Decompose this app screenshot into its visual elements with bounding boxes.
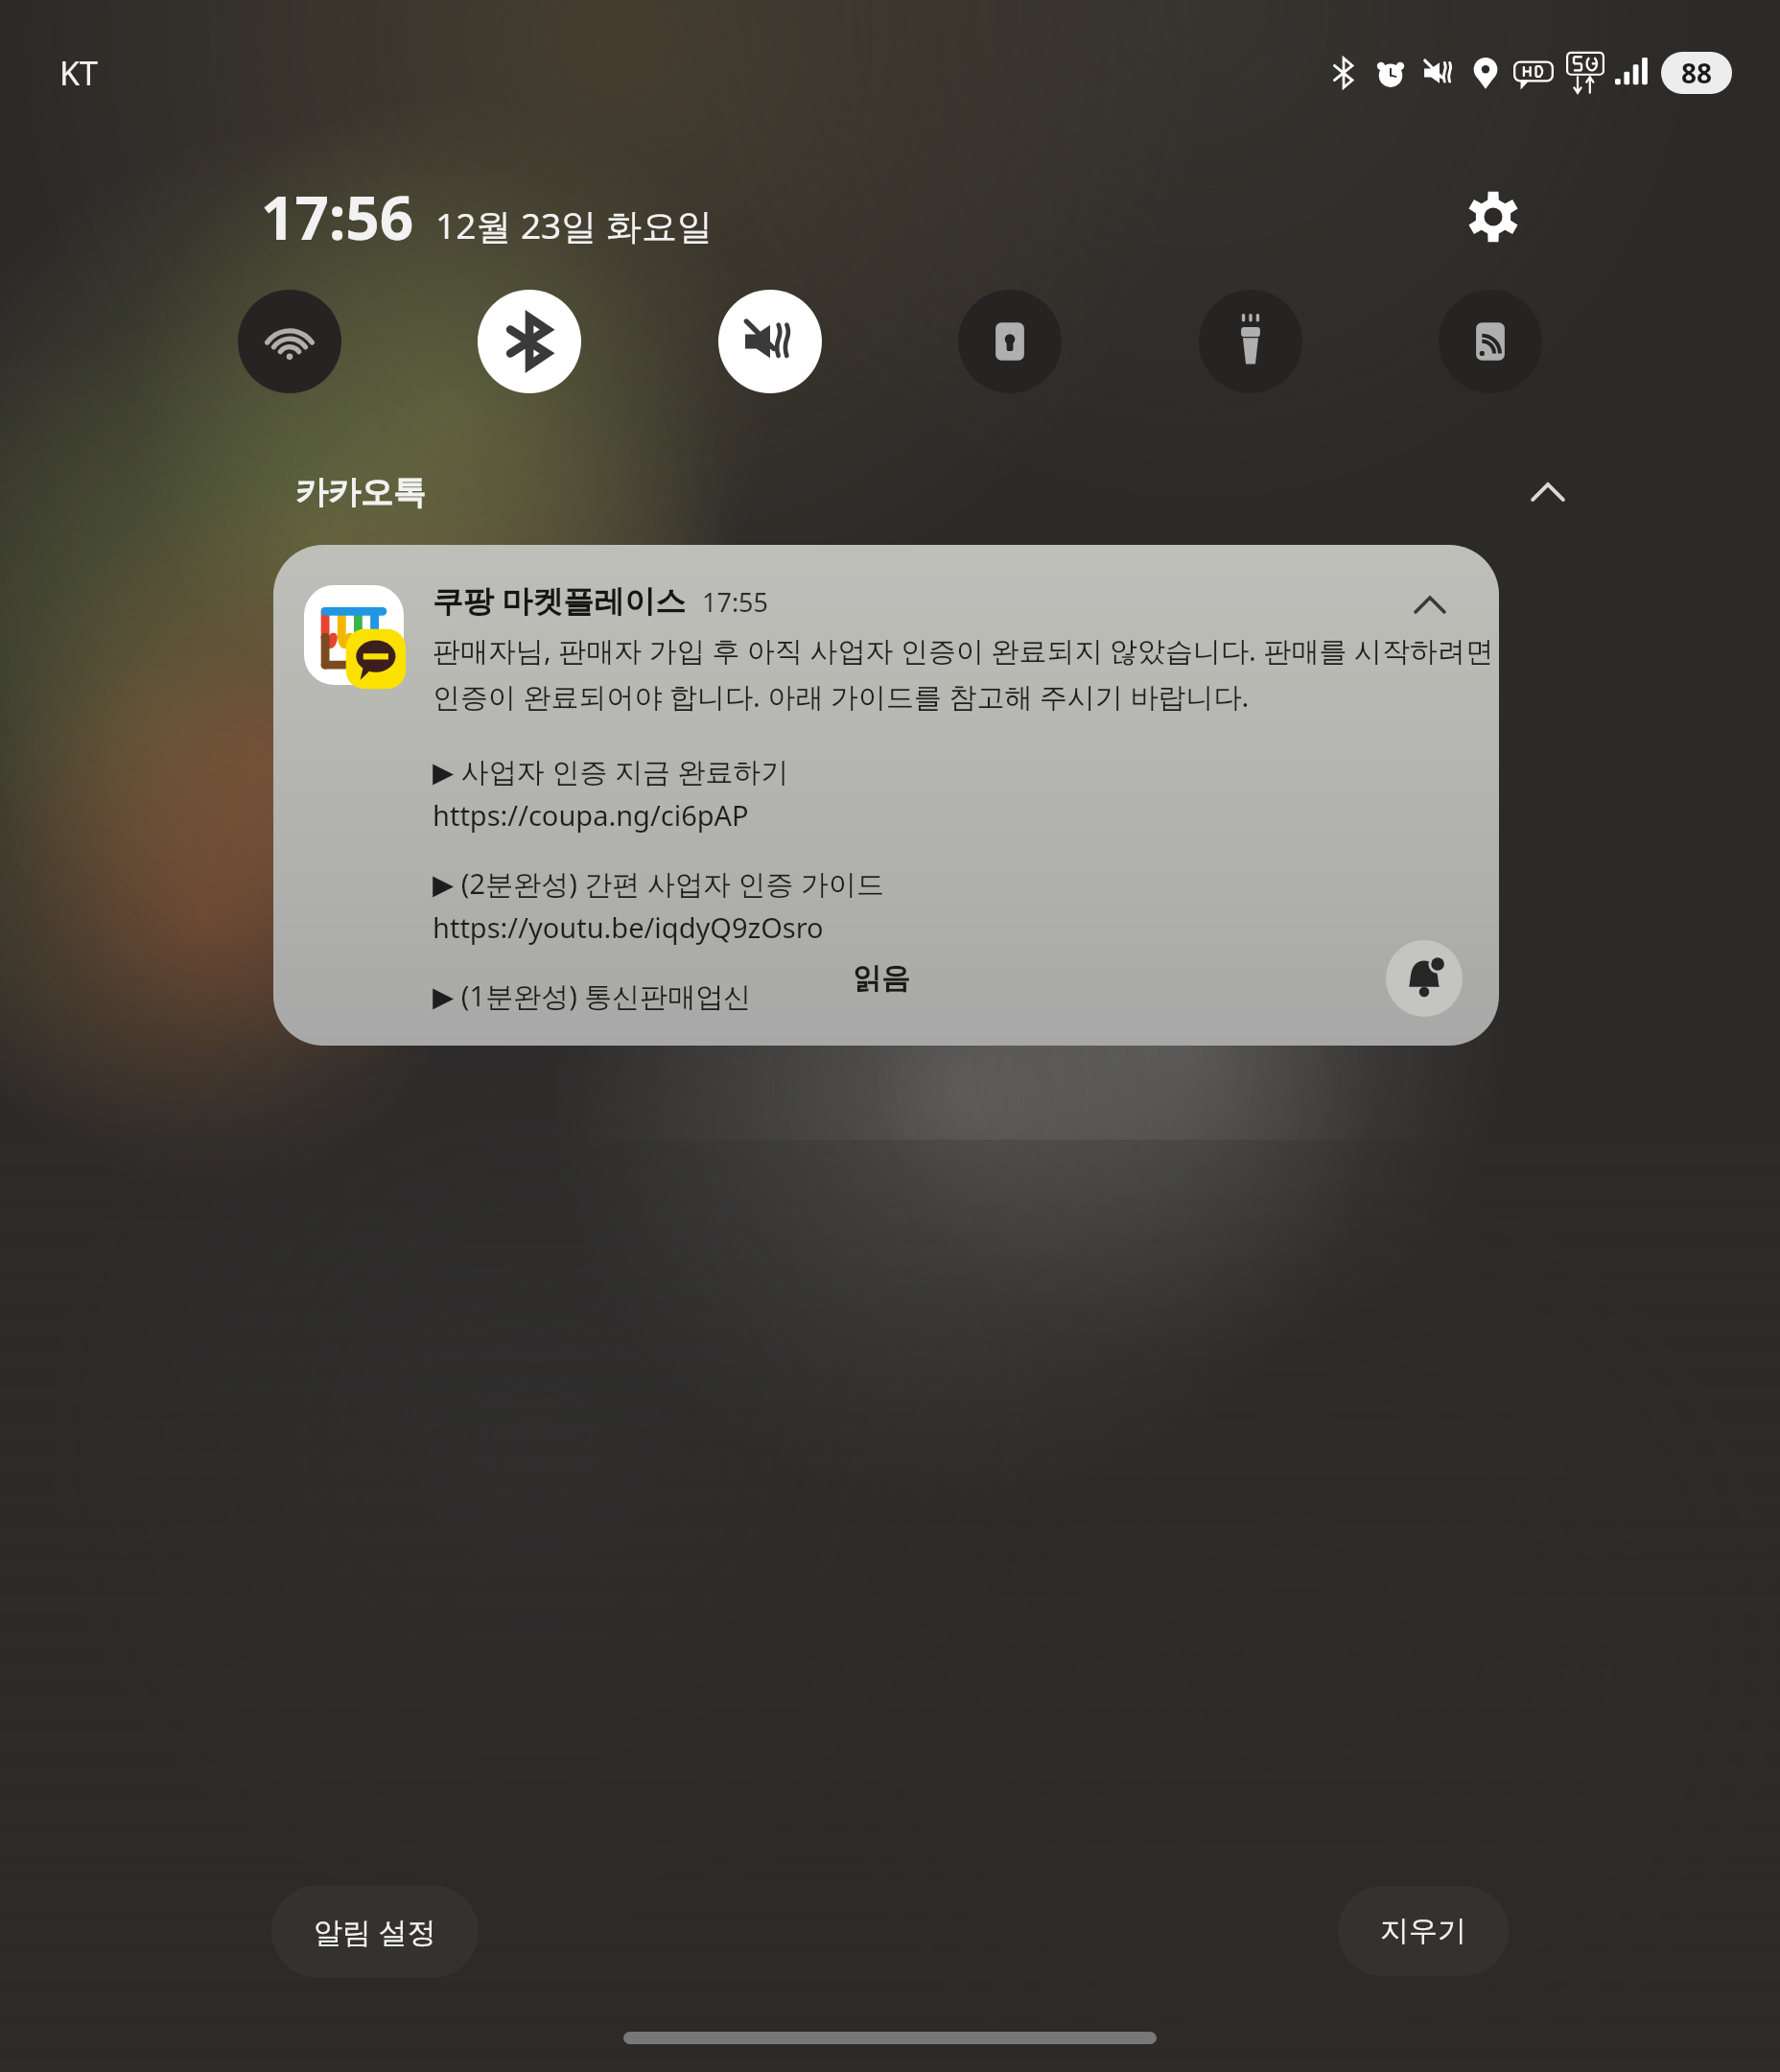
- button[interactable]: 쿠팡 마켓플레이스: [273, 545, 1499, 1046]
- button[interactable]: 알림 설정: [271, 1885, 479, 1978]
- staticText: 17:56: [261, 177, 414, 257]
- staticText: 지우기: [1380, 1913, 1466, 1949]
- button[interactable]: Flashlight: [1199, 290, 1302, 393]
- button[interactable]: Settings: [1452, 176, 1534, 258]
- staticText: KT: [59, 51, 98, 95]
- staticText: ▶ (2분완성) 간편 사업자 인증 가이드: [433, 864, 884, 903]
- button[interactable]: 지우기: [1338, 1886, 1509, 1976]
- staticText: 인증이 완료되어야 합니다. 아래 가이드를 참고해 주시기 바랍니다.: [433, 677, 1250, 716]
- staticText: ▶ (1분완성) 통신판매업신: [433, 977, 752, 1015]
- button[interactable]: Wi-Fi: [238, 290, 341, 393]
- staticText: 88: [1681, 55, 1713, 91]
- button[interactable]: Smart View: [1439, 290, 1542, 393]
- button[interactable]: Notification settings: [1386, 940, 1463, 1017]
- button[interactable]: Mute: [718, 290, 822, 393]
- button[interactable]: Collapse notification: [1395, 570, 1464, 639]
- button[interactable]: Bluetooth: [478, 290, 581, 393]
- staticText: https://coupa.ng/ci6pAP: [433, 796, 749, 834]
- button[interactable]: Auto rotate lock: [958, 290, 1062, 393]
- staticText: 읽음: [853, 960, 910, 997]
- staticText: https://youtu.be/iqdyQ9zOsro: [433, 908, 824, 946]
- staticText: 17:55: [702, 584, 769, 620]
- staticText: 12월 23일 화요일: [435, 200, 713, 249]
- button[interactable]: 읽음: [853, 960, 910, 997]
- staticText: 카카오톡: [295, 472, 426, 513]
- staticText: 판매자님, 판매자 가입 후 아직 사업자 인증이 완료되지 않았습니다. 판매…: [433, 631, 1499, 670]
- staticText: 알림 설정: [314, 1912, 436, 1951]
- staticText: ▶ 사업자 인증 지금 완료하기: [433, 752, 789, 790]
- staticText: 쿠팡 마켓플레이스: [433, 579, 687, 622]
- button[interactable]: Collapse group: [1512, 460, 1583, 524]
